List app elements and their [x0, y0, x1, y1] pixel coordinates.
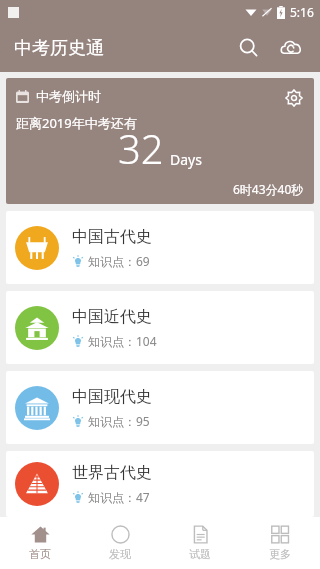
- staticText: 5:16: [290, 4, 314, 20]
- staticText: 更多: [269, 547, 291, 561]
- button[interactable]: 中国现代史: [6, 371, 314, 444]
- button[interactable]: Search: [228, 27, 270, 69]
- button[interactable]: 世界古代史: [6, 451, 314, 517]
- staticText: 知识点：95: [88, 413, 150, 429]
- staticText: 中考历史通: [14, 37, 104, 60]
- staticText: 6时43分40秒: [233, 181, 304, 197]
- button[interactable]: 更多: [240, 517, 320, 569]
- staticText: 知识点：104: [88, 333, 157, 349]
- staticText: 中国古代史: [72, 227, 152, 247]
- staticText: 中考倒计时: [36, 88, 101, 104]
- staticText: 世界古代史: [72, 463, 152, 483]
- button[interactable]: Sync cloud: [270, 27, 312, 69]
- staticText: 首页: [29, 547, 51, 561]
- button[interactable]: 中国古代史: [6, 211, 314, 284]
- staticText: Days: [170, 150, 202, 169]
- button[interactable]: 发现: [80, 517, 160, 569]
- staticText: 知识点：47: [88, 489, 150, 505]
- staticText: 知识点：69: [88, 253, 150, 269]
- staticText: 试题: [189, 547, 211, 561]
- staticText: 中国近代史: [72, 307, 152, 327]
- staticText: 中国现代史: [72, 387, 152, 407]
- button[interactable]: 中考倒计时: [6, 78, 314, 204]
- button[interactable]: Settings: [278, 82, 310, 114]
- staticText: 32: [118, 121, 164, 175]
- button[interactable]: 首页: [0, 517, 80, 569]
- staticText: 发现: [109, 547, 131, 561]
- button[interactable]: 中国近代史: [6, 291, 314, 364]
- button[interactable]: 试题: [160, 517, 240, 569]
- staticText: 距离2019年中考还有: [16, 114, 137, 132]
